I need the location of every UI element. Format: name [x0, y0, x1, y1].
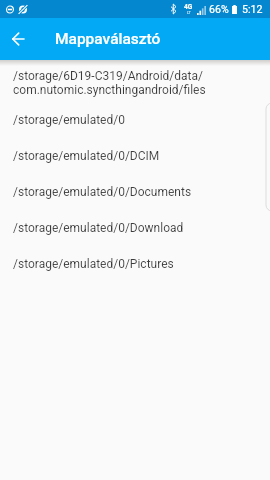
staticText: /storage/emulated/0/Pictures: [13, 257, 174, 271]
staticText: /storage/6D19-C319/Android/data/: [13, 69, 203, 83]
staticText: 66%: [209, 3, 229, 15]
staticText: LT: [187, 11, 191, 15]
button[interactable]: /storage/emulated/0/Download: [0, 210, 270, 246]
button[interactable]: /storage/emulated/0/DCIM: [0, 138, 270, 174]
staticText: /storage/emulated/0/Documents: [13, 185, 192, 199]
button[interactable]: /storage/emulated/0/Documents: [0, 174, 270, 210]
button[interactable]: /storage/emulated/0/Pictures: [0, 246, 270, 282]
button[interactable]: /storage/6D19-C319/Android/data/: [0, 64, 270, 102]
staticText: Mappaválasztó: [55, 30, 161, 48]
button[interactable]: /storage/emulated/0: [0, 102, 270, 138]
staticText: /storage/emulated/0/DCIM: [13, 149, 160, 163]
staticText: 4G: [184, 3, 193, 11]
staticText: /storage/emulated/0: [13, 113, 125, 127]
staticText: 5:12: [242, 3, 263, 15]
button[interactable]: Navigate up: [0, 18, 36, 60]
staticText: /storage/emulated/0/Download: [13, 221, 184, 235]
staticText: com.nutomic.syncthingandroid/files: [13, 83, 206, 97]
